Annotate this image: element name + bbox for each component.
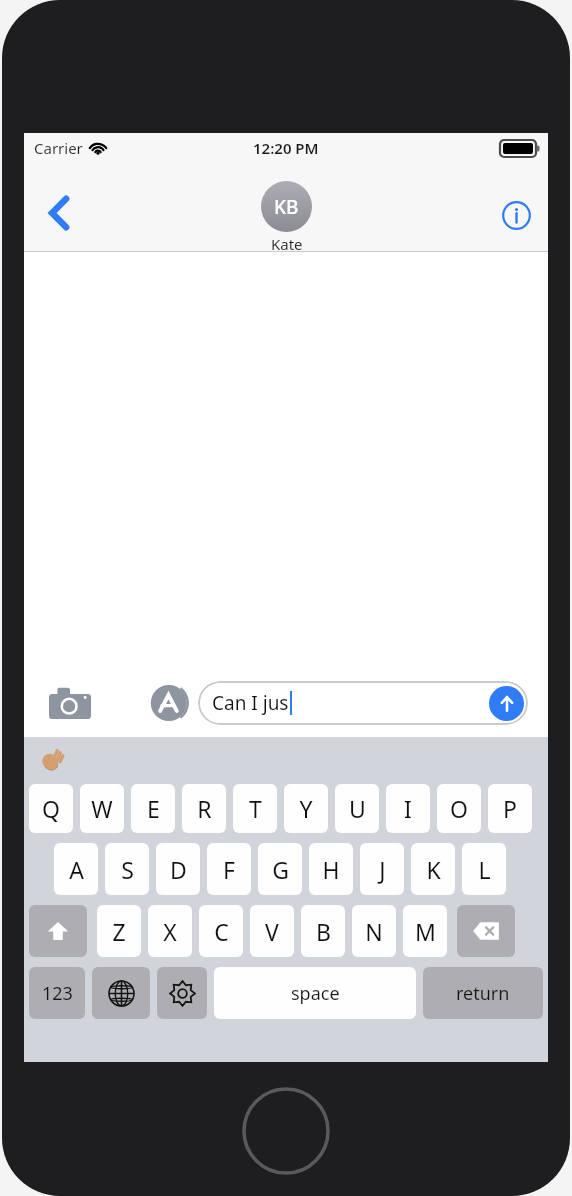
button[interactable]: W bbox=[80, 784, 124, 833]
button[interactable]: S bbox=[105, 843, 149, 895]
button[interactable]: Camera bbox=[46, 679, 94, 727]
staticText: Kate bbox=[271, 234, 303, 254]
staticText: F bbox=[223, 854, 235, 885]
button[interactable]: Apps bbox=[146, 679, 194, 727]
staticText: K bbox=[426, 854, 441, 885]
button[interactable]: KB bbox=[261, 181, 312, 254]
button[interactable]: E bbox=[131, 784, 175, 833]
staticText: U bbox=[349, 793, 366, 824]
staticText: N bbox=[365, 916, 383, 947]
staticText: return bbox=[456, 981, 510, 1006]
button[interactable]: P bbox=[488, 784, 532, 833]
button[interactable]: Q bbox=[29, 784, 73, 833]
staticText: B bbox=[316, 916, 331, 947]
staticText: X bbox=[163, 916, 177, 947]
button[interactable]: return bbox=[423, 967, 543, 1019]
staticText: Z bbox=[112, 916, 126, 947]
staticText: Carrier bbox=[34, 138, 83, 158]
staticText: M bbox=[415, 916, 436, 947]
button[interactable]: Shift bbox=[29, 905, 87, 957]
button[interactable]: Can I jus bbox=[198, 681, 528, 725]
button[interactable]: N bbox=[352, 905, 396, 957]
button[interactable]: G bbox=[258, 843, 302, 895]
button[interactable]: space bbox=[214, 967, 416, 1019]
staticText: space bbox=[291, 981, 340, 1006]
button[interactable]: Z bbox=[97, 905, 141, 957]
staticText: W bbox=[91, 793, 113, 824]
staticText: T bbox=[249, 793, 262, 824]
button[interactable]: C bbox=[199, 905, 243, 957]
button[interactable]: OK hand emoji suggestion bbox=[38, 743, 70, 775]
staticText: V bbox=[265, 916, 279, 947]
staticText: I bbox=[404, 793, 412, 824]
button[interactable]: U bbox=[335, 784, 379, 833]
staticText: P bbox=[503, 793, 517, 824]
staticText: H bbox=[322, 854, 340, 885]
button[interactable]: Details bbox=[494, 193, 538, 237]
button[interactable]: J bbox=[360, 843, 404, 895]
button[interactable]: B bbox=[301, 905, 345, 957]
staticText: R bbox=[197, 793, 212, 824]
button[interactable]: L bbox=[462, 843, 506, 895]
staticText: S bbox=[121, 854, 134, 885]
button[interactable]: D bbox=[156, 843, 200, 895]
button[interactable]: F bbox=[207, 843, 251, 895]
button[interactable]: V bbox=[250, 905, 294, 957]
button[interactable]: Delete bbox=[457, 905, 515, 957]
button[interactable]: Y bbox=[284, 784, 328, 833]
button[interactable]: H bbox=[309, 843, 353, 895]
staticText: KB bbox=[274, 194, 299, 220]
staticText: L bbox=[478, 854, 491, 885]
staticText: J bbox=[379, 854, 386, 885]
button[interactable]: T bbox=[233, 784, 277, 833]
button[interactable]: A bbox=[54, 843, 98, 895]
staticText: Y bbox=[299, 793, 313, 824]
button[interactable]: 123 bbox=[29, 967, 85, 1019]
staticText: D bbox=[170, 854, 187, 885]
staticText: A bbox=[69, 854, 84, 885]
staticText: Q bbox=[42, 793, 60, 824]
button[interactable]: Back bbox=[36, 189, 84, 237]
button[interactable]: K bbox=[411, 843, 455, 895]
button[interactable]: I bbox=[386, 784, 430, 833]
staticText: Can I jus bbox=[212, 690, 289, 716]
button[interactable]: Keyboard settings bbox=[157, 967, 207, 1019]
button[interactable]: Change keyboard language bbox=[92, 967, 150, 1019]
button[interactable]: O bbox=[437, 784, 481, 833]
button[interactable]: X bbox=[148, 905, 192, 957]
staticText: G bbox=[272, 854, 289, 885]
staticText: E bbox=[147, 793, 160, 824]
button[interactable]: Home bbox=[242, 1087, 330, 1175]
staticText: C bbox=[214, 916, 229, 947]
button[interactable]: Send bbox=[489, 686, 524, 721]
button[interactable]: M bbox=[403, 905, 447, 957]
staticText: 123 bbox=[42, 981, 73, 1006]
staticText: O bbox=[450, 793, 468, 824]
staticText: 12:20 PM bbox=[253, 138, 319, 158]
button[interactable]: R bbox=[182, 784, 226, 833]
